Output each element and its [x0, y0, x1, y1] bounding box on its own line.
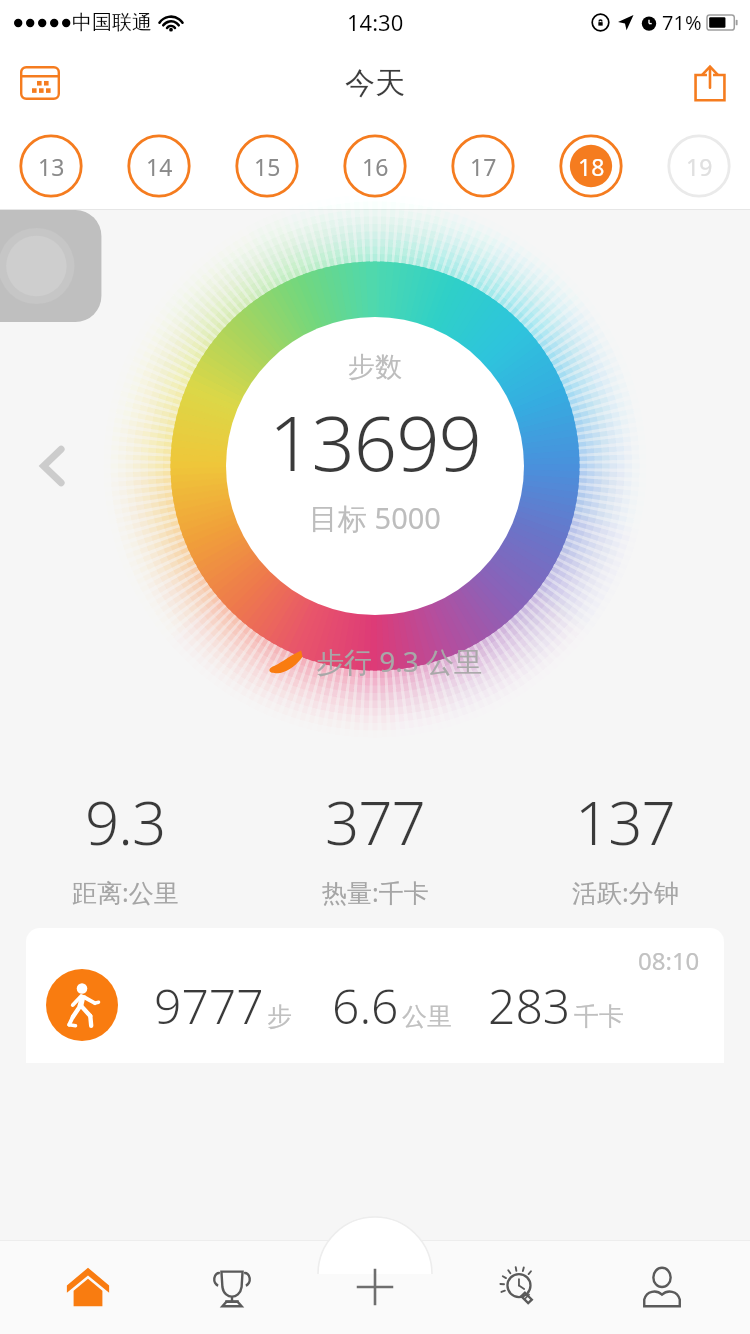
button[interactable]: 13	[14, 129, 88, 203]
staticText: 19	[686, 151, 713, 182]
button[interactable]: 137	[500, 770, 750, 920]
staticText: 14	[146, 151, 173, 182]
button[interactable]: Calendar	[12, 55, 68, 111]
staticText: 18	[578, 151, 605, 182]
button[interactable]: Discover	[463, 1240, 573, 1334]
staticText: 71%	[662, 9, 702, 36]
staticText: 活跃:分钟	[572, 875, 679, 909]
button[interactable]: 16	[338, 129, 412, 203]
button[interactable]: 9.3	[0, 770, 250, 920]
button[interactable]: Profile	[607, 1240, 717, 1334]
staticText: 14:30	[347, 7, 404, 37]
button[interactable]: Achievements	[177, 1240, 287, 1334]
staticText: 步行 9.3 公里	[316, 642, 483, 680]
staticText: 今天	[345, 64, 405, 102]
staticText: 13699	[269, 390, 481, 494]
button[interactable]: Share	[682, 55, 738, 111]
staticText: 6.6	[332, 973, 399, 1038]
staticText: 15	[254, 151, 281, 182]
button[interactable]: 15	[230, 129, 304, 203]
button[interactable]: Previous	[22, 436, 82, 496]
staticText: 9.3	[85, 781, 166, 863]
button[interactable]: Home	[33, 1240, 143, 1334]
button[interactable]: Device	[0, 210, 130, 322]
button[interactable]: 17	[446, 129, 520, 203]
staticText: 137	[575, 781, 675, 863]
staticText: 283	[488, 973, 571, 1038]
staticText: 热量:千卡	[322, 875, 429, 909]
staticText: 13	[38, 151, 65, 182]
staticText: 377	[325, 781, 425, 863]
button[interactable]: 19	[662, 129, 736, 203]
button[interactable]: 08:10	[26, 928, 724, 1063]
staticText: 17	[470, 151, 497, 182]
staticText: 16	[362, 151, 389, 182]
staticText: 千卡	[574, 1001, 624, 1032]
button[interactable]: 377	[250, 770, 500, 920]
staticText: 步	[267, 1001, 292, 1032]
staticText: 中国联通	[72, 10, 152, 35]
button[interactable]: 14	[122, 129, 196, 203]
staticText: 目标 5000	[309, 498, 441, 538]
staticText: 步数	[348, 350, 402, 384]
staticText: 08:10	[638, 944, 700, 977]
staticText: 公里	[402, 1001, 452, 1032]
staticText: 9777	[154, 973, 264, 1038]
staticText: 距离:公里	[72, 875, 179, 909]
button[interactable]: Add	[320, 1240, 430, 1334]
button[interactable]: 18	[554, 129, 628, 203]
